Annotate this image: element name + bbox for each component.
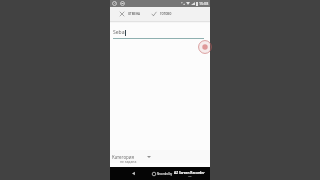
button[interactable]: Cancel <box>119 8 141 20</box>
staticText: AZ Screen Recorder <box>174 171 205 175</box>
staticText: не задана <box>120 159 137 164</box>
button[interactable]: Save <box>151 8 172 20</box>
staticText: Seba <box>113 29 125 36</box>
staticText: ГОТОВО <box>160 12 172 16</box>
other: Save <box>151 11 157 17</box>
staticText: ОТМЕНА <box>128 12 141 16</box>
staticText: LITE <box>188 175 192 177</box>
button[interactable]: Категория <box>110 150 210 163</box>
other: Cancel <box>119 11 125 17</box>
staticText: Recorded by <box>157 172 173 176</box>
button[interactable]: Back <box>131 171 136 176</box>
staticText: Категория <box>112 154 134 160</box>
staticText: 15:08 <box>199 1 209 6</box>
